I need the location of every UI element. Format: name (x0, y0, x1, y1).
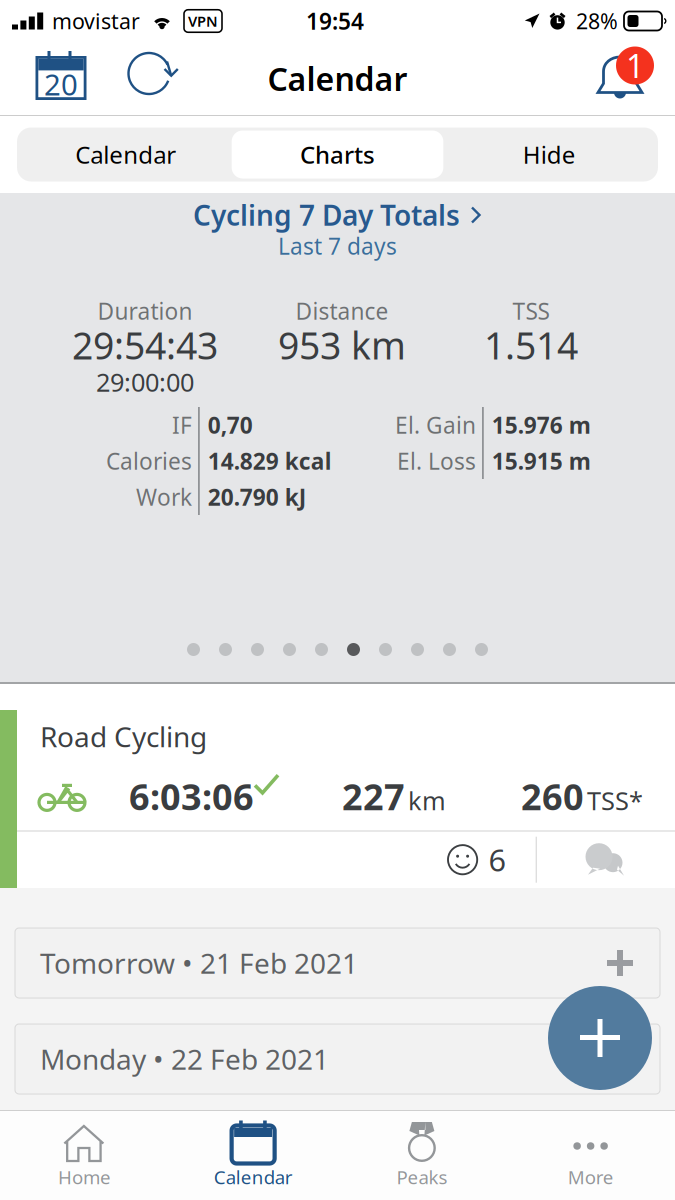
staticText: More (568, 1165, 614, 1189)
button[interactable]: More (506, 1111, 675, 1200)
staticText: 14.829 kcal (208, 446, 332, 476)
staticText: TSS* (587, 784, 643, 817)
staticText: Calendar (214, 1165, 293, 1189)
staticText: 15.976 m (492, 410, 591, 440)
button[interactable]: Tomorrow • 21 Feb 2021 (15, 928, 660, 998)
staticText: 29:54:43 (72, 320, 218, 370)
button[interactable]: Hide (443, 130, 655, 178)
staticText: Distance (295, 296, 388, 326)
staticText: Duration (97, 296, 192, 326)
staticText: Cycling 7 Day Totals (193, 196, 460, 234)
button[interactable]: Notifications, 1 new (590, 42, 668, 115)
staticText: 1.514 (484, 320, 578, 370)
staticText: 953 km (278, 320, 406, 370)
staticText: 20.790 kJ (208, 482, 307, 512)
staticText: Home (58, 1165, 111, 1189)
button[interactable]: Peaks (337, 1111, 506, 1200)
button[interactable]: Cycling 7 Day Totals (193, 193, 482, 232)
staticText: Road Cycling (40, 718, 207, 755)
staticText: Calendar (75, 139, 176, 170)
staticText: 20 (44, 64, 78, 103)
button[interactable]: Add workout (548, 986, 652, 1090)
staticText: IF (172, 410, 192, 440)
button[interactable]: Charts (232, 130, 443, 178)
button[interactable]: 6 (418, 832, 536, 888)
button[interactable]: Today, 20 (22, 42, 100, 115)
button[interactable]: Calendar (20, 130, 232, 178)
staticText: Monday • 22 Feb 2021 (40, 1040, 329, 1078)
staticText: Calories (106, 446, 192, 476)
button[interactable]: Monday • 22 Feb 2021 (15, 1024, 660, 1094)
staticText: Work (136, 482, 192, 512)
staticText: VPN (188, 11, 218, 31)
staticText: km (408, 784, 446, 817)
staticText: 15.915 m (492, 446, 591, 476)
staticText: El. Loss (397, 446, 476, 476)
staticText: Hide (523, 139, 576, 170)
staticText: 29:00:00 (96, 365, 194, 399)
staticText: Peaks (396, 1165, 447, 1189)
staticText: 6:03:06 (129, 772, 254, 820)
button[interactable]: Refresh (100, 42, 178, 115)
staticText: 19:54 (306, 6, 364, 36)
staticText: Calendar (267, 57, 407, 100)
staticText: 260 (521, 772, 584, 820)
staticText: 28% (576, 7, 618, 35)
staticText: El. Gain (395, 410, 476, 440)
staticText: Charts (300, 139, 375, 170)
staticText: 1 (626, 44, 644, 87)
staticText: Last 7 days (278, 231, 397, 261)
button[interactable]: Comments (537, 832, 675, 888)
staticText: Tomorrow • 21 Feb 2021 (40, 944, 358, 982)
staticText: 0,70 (208, 410, 253, 440)
staticText: movistar (52, 7, 140, 35)
button[interactable]: Calendar (169, 1111, 338, 1200)
staticText: 6 (489, 839, 507, 880)
button[interactable]: Home (0, 1111, 169, 1200)
staticText: TSS (512, 296, 549, 326)
staticText: 227 (342, 772, 405, 820)
